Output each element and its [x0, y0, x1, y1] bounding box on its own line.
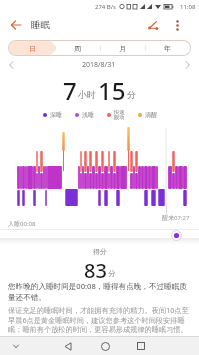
- button[interactable]: 日: [9, 41, 55, 55]
- staticText: 深睡: [50, 111, 62, 119]
- staticText: 15: [98, 74, 126, 104]
- staticText: 分: [127, 89, 136, 100]
- staticText: 醒来07:27: [162, 214, 190, 222]
- staticText: 分: [108, 269, 116, 278]
- staticText: 入睡00:08: [8, 220, 36, 228]
- button[interactable]: [171, 230, 182, 241]
- button[interactable]: [98, 339, 112, 353]
- staticText: 保证充足的睡眠时间，才能拥有充沛的精力。夜间10点至早晨6点是黄金睡眠时间，建议…: [8, 305, 191, 335]
- staticText: 11:08: [180, 3, 196, 11]
- staticText: 浅睡: [82, 111, 94, 119]
- staticText: 清醒: [145, 111, 157, 119]
- button[interactable]: [9, 61, 14, 69]
- button[interactable]: 年: [145, 41, 190, 55]
- staticText: 日: [29, 44, 36, 53]
- button[interactable]: [145, 17, 161, 33]
- button[interactable]: [61, 339, 75, 353]
- staticText: 周: [74, 44, 81, 53]
- staticText: 月: [119, 44, 126, 53]
- button[interactable]: 周: [55, 41, 100, 55]
- staticText: 年: [164, 44, 171, 53]
- button[interactable]: [134, 339, 148, 353]
- staticText: 2018/8/31: [82, 60, 116, 70]
- staticText: 83: [84, 257, 107, 281]
- staticText: 得分: [93, 247, 107, 256]
- staticText: 274 B/s: [95, 3, 116, 11]
- button[interactable]: [171, 19, 183, 31]
- staticText: 睡眠: [31, 19, 50, 31]
- staticText: 快速 眼动: [114, 109, 125, 121]
- button[interactable]: [12, 343, 20, 349]
- staticText: 您昨晚的入睡时间是00:08，睡得有点晚，不过睡眠质量还不错。: [8, 281, 191, 302]
- button[interactable]: [185, 61, 190, 69]
- button[interactable]: [8, 17, 24, 33]
- staticText: 7: [63, 74, 77, 104]
- button[interactable]: 月: [100, 41, 145, 55]
- staticText: 小时: [78, 89, 96, 100]
